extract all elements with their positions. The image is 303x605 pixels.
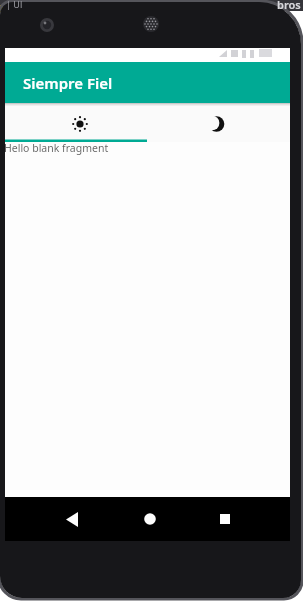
staticText: Hello blank fragment: [4, 141, 109, 155]
button[interactable]: [5, 103, 147, 142]
button[interactable]: [147, 103, 290, 142]
staticText: | Ul: [6, 0, 23, 10]
staticText: bros: [277, 0, 301, 12]
button[interactable]: [52, 499, 92, 539]
button[interactable]: [205, 499, 245, 539]
button[interactable]: [130, 499, 170, 539]
staticText: Siempre Fiel: [23, 73, 113, 93]
